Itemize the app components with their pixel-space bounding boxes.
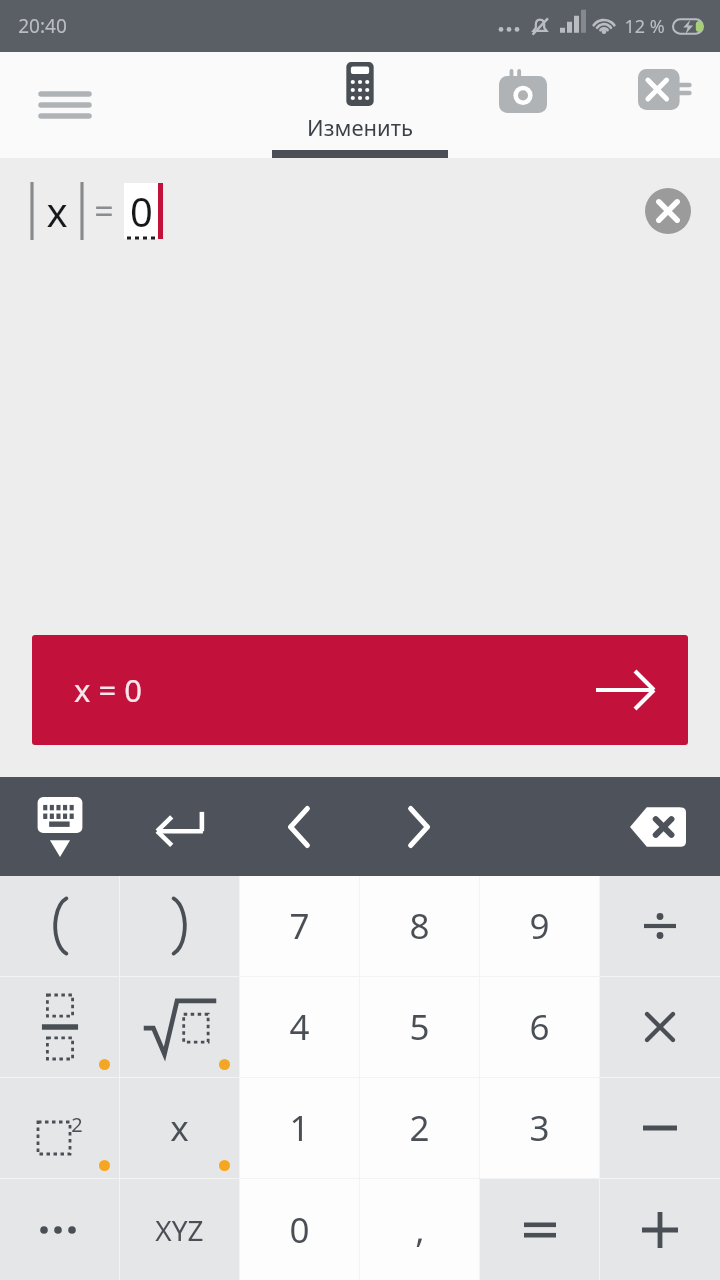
staticText: x = 0	[74, 669, 142, 711]
button[interactable]: Move right	[378, 777, 460, 876]
button[interactable]: Camera	[462, 52, 584, 158]
button[interactable]: Изменить	[270, 52, 450, 158]
button[interactable]: 9	[480, 876, 599, 976]
staticText: XYZ	[155, 1211, 204, 1249]
staticText: 8	[409, 902, 430, 950]
button[interactable]	[120, 876, 239, 976]
button[interactable]: 4	[240, 977, 359, 1077]
button[interactable]: Enter	[138, 777, 220, 876]
staticText: 0	[130, 184, 153, 238]
button[interactable]: 2	[0, 1078, 119, 1178]
staticText: 20:40	[18, 13, 67, 39]
staticText: 5	[409, 1003, 430, 1051]
staticText: Изменить	[307, 112, 413, 142]
staticText: 7	[289, 902, 310, 950]
staticText: 4	[289, 1003, 310, 1051]
button[interactable]	[120, 977, 239, 1077]
button[interactable]	[600, 1179, 720, 1280]
staticText: 2	[409, 1104, 430, 1152]
button[interactable]: 1	[240, 1078, 359, 1178]
button[interactable]	[600, 876, 720, 976]
button[interactable]: Move left	[258, 777, 340, 876]
button[interactable]: x = 0	[32, 635, 688, 745]
button[interactable]: Solve for X	[608, 52, 720, 158]
button[interactable]: 5	[360, 977, 479, 1077]
button[interactable]: 2	[360, 1078, 479, 1178]
button[interactable]: ,	[360, 1179, 479, 1280]
staticText: 0	[289, 1206, 310, 1254]
staticText: 1	[289, 1104, 310, 1152]
button[interactable]	[0, 876, 119, 976]
staticText: 12 %	[624, 14, 665, 39]
staticText: 3	[529, 1104, 550, 1152]
button[interactable]: 7	[240, 876, 359, 976]
button[interactable]: 3	[480, 1078, 599, 1178]
staticText: =	[94, 188, 114, 234]
button[interactable]: 0	[240, 1179, 359, 1280]
button[interactable]: Clear	[642, 185, 694, 237]
button[interactable]: Backspace	[616, 795, 700, 859]
button[interactable]: XYZ	[120, 1179, 239, 1280]
button[interactable]	[600, 1078, 720, 1178]
staticText: 6	[529, 1003, 550, 1051]
button[interactable]: 6	[480, 977, 599, 1077]
button[interactable]	[0, 1179, 119, 1280]
staticText: x	[46, 184, 68, 238]
staticText: ,	[415, 1206, 425, 1254]
button[interactable]	[0, 977, 119, 1077]
staticText: 2	[71, 1111, 83, 1138]
button[interactable]: Menu	[0, 52, 130, 158]
staticText: x	[170, 1104, 189, 1152]
button[interactable]: Hide keyboard	[18, 777, 102, 876]
staticText: 9	[529, 902, 550, 950]
button[interactable]	[600, 977, 720, 1077]
button[interactable]: 8	[360, 876, 479, 976]
button[interactable]: x	[120, 1078, 239, 1178]
button[interactable]	[480, 1179, 599, 1280]
